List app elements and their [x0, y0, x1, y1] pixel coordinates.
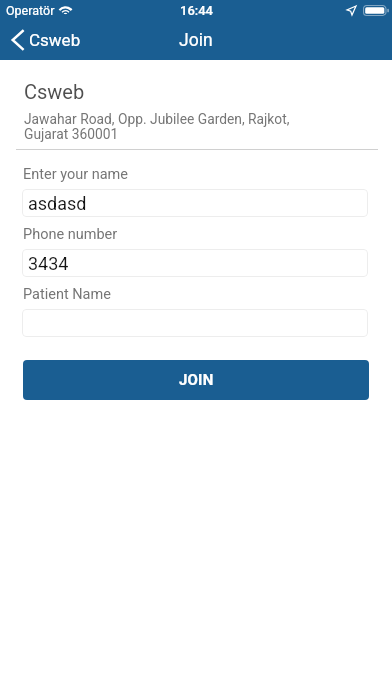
- staticText: Operatör: [6, 3, 55, 18]
- staticText: 3434: [28, 253, 69, 274]
- staticText: asdasd: [28, 193, 87, 214]
- staticText: JOIN: [179, 371, 214, 389]
- staticText: Csweb: [24, 80, 85, 103]
- button[interactable]: Csweb: [0, 25, 91, 55]
- button[interactable]: asdasd: [22, 189, 368, 217]
- staticText: Phone number: [23, 226, 118, 243]
- staticText: Enter your name: [23, 166, 129, 183]
- button[interactable]: 3434: [22, 249, 368, 277]
- staticText: Patient Name: [23, 286, 111, 303]
- staticText: Jawahar Road, Opp. Jubilee Garden, Rajko…: [24, 111, 290, 142]
- button[interactable]: Patient Name: [22, 309, 368, 337]
- staticText: Join: [179, 30, 213, 51]
- staticText: 16:44: [180, 3, 213, 18]
- button[interactable]: JOIN: [23, 360, 369, 400]
- staticText: Csweb: [29, 30, 81, 50]
